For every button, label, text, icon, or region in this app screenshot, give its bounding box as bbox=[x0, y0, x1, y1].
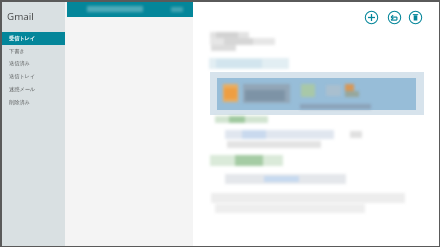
button[interactable]: Delete bbox=[408, 10, 423, 25]
button[interactable]: Reply all bbox=[387, 10, 402, 25]
button[interactable]: 下書き bbox=[2, 45, 65, 58]
staticText: 削除済み bbox=[9, 99, 30, 106]
button[interactable]: 受信トレイ bbox=[2, 32, 65, 45]
button[interactable] bbox=[217, 78, 416, 110]
staticText: 迷惑メール bbox=[9, 86, 36, 93]
button[interactable]: 送信済み bbox=[2, 57, 65, 70]
button[interactable] bbox=[67, 2, 193, 17]
button[interactable]: 送信トレイ bbox=[2, 70, 65, 83]
staticText: 下書き bbox=[9, 48, 25, 55]
button[interactable]: 迷惑メール bbox=[2, 83, 65, 96]
staticText: 送信済み bbox=[9, 60, 30, 67]
staticText: 受信トレイ bbox=[9, 35, 36, 42]
button[interactable]: 削除済み bbox=[2, 96, 65, 109]
staticText: Gmail bbox=[7, 10, 34, 23]
button[interactable]: New message bbox=[364, 10, 379, 25]
staticText: 送信トレイ bbox=[9, 73, 36, 80]
